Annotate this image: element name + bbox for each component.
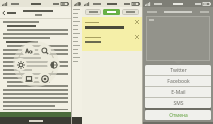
button[interactable]: Theme [47, 58, 60, 71]
button[interactable]: Brightness [14, 58, 27, 71]
button[interactable]: Close [135, 20, 139, 24]
button[interactable] [146, 10, 158, 14]
button[interactable] [122, 9, 139, 15]
button[interactable]: Twitter [145, 65, 211, 75]
button[interactable]: E-Mail [145, 87, 211, 97]
button[interactable]: Отмена [145, 110, 211, 120]
button[interactable] [85, 9, 101, 15]
button[interactable]: Close [82, 17, 142, 51]
staticText: Facebook [167, 78, 190, 85]
button[interactable]: Facebook [145, 76, 211, 86]
button[interactable]: Font size [22, 44, 35, 57]
staticText: E-Mail [171, 89, 186, 96]
button[interactable] [199, 10, 210, 14]
button[interactable]: Display [22, 72, 35, 85]
staticText: SMS [173, 100, 184, 107]
button[interactable]: Close field [135, 35, 139, 39]
staticText: Отмена [169, 112, 188, 119]
button[interactable]: Search [38, 44, 51, 57]
button[interactable]: SMS [145, 98, 211, 108]
button[interactable]: Back [0, 10, 18, 16]
button[interactable]: Settings [38, 72, 51, 85]
button[interactable] [103, 9, 120, 15]
staticText: Twitter [170, 67, 187, 74]
